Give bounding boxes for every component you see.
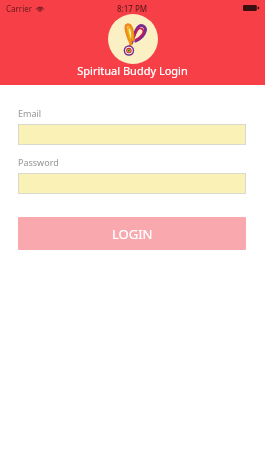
button[interactable]: LOGIN [18,217,246,250]
staticText: Spiritual Buddy Login [0,63,265,78]
button[interactable] [18,173,246,194]
staticText: 8:17 PM [117,3,148,14]
staticText: Password [18,156,59,168]
button[interactable] [18,124,246,145]
staticText: Email [18,107,42,119]
staticText: LOGIN [112,225,153,243]
staticText: Carrier [6,3,33,14]
